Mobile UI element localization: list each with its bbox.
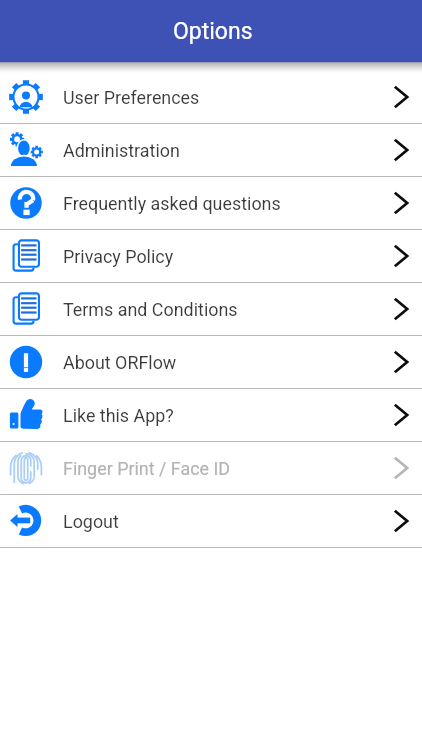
staticText: Administration	[63, 140, 180, 161]
staticText: About ORFlow	[63, 352, 177, 373]
staticText: Terms and Conditions	[63, 299, 238, 320]
button[interactable]: Logout	[0, 495, 422, 548]
button[interactable]: User Preferences	[0, 71, 422, 124]
button[interactable]: Administration	[0, 124, 422, 177]
button[interactable]: Like this App	[0, 389, 422, 442]
staticText: Logout	[63, 511, 119, 532]
button[interactable]: Privacy Policy	[0, 230, 422, 283]
staticText: Privacy Policy	[63, 246, 174, 267]
button[interactable]: About ORFlow	[0, 336, 422, 389]
staticText: Finger Print / Face ID	[63, 458, 231, 479]
button[interactable]: Frequently asked questions	[0, 177, 422, 230]
button[interactable]: Terms and Conditions	[0, 283, 422, 336]
staticText: User Preferences	[63, 87, 200, 108]
staticText: Like this App?	[63, 405, 174, 426]
button[interactable]: Finger Print / Face ID	[0, 442, 422, 495]
staticText: Options	[173, 18, 253, 45]
staticText: Frequently asked questions	[63, 193, 281, 214]
